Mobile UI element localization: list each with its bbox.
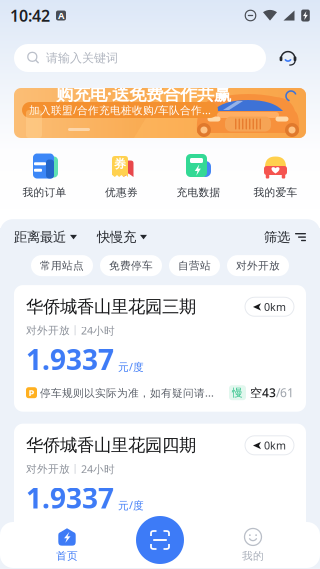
staticText: 华侨城香山里花园三期 [26, 296, 196, 317]
staticText: 元/度 [118, 360, 144, 374]
staticText: 筛选 [264, 229, 290, 245]
staticText: 1.9337 [26, 341, 114, 378]
button[interactable]: 扫一扫 [136, 516, 184, 564]
staticText: 丨 [70, 324, 81, 337]
button[interactable]: 在线客服 [266, 44, 310, 72]
staticText: 停车规则以实际为准，如有疑问请... [40, 524, 214, 538]
staticText: 我的爱车 [253, 186, 297, 199]
staticText: 10:42 [10, 5, 50, 26]
staticText: A [58, 9, 64, 22]
staticText: 充电数据 [176, 186, 220, 199]
staticText: 0km [264, 438, 286, 452]
staticText: 对外开放 [26, 462, 70, 476]
button[interactable]: 筛选 [264, 229, 306, 245]
staticText: 优惠券 [105, 186, 138, 199]
button[interactable]: 常用站点 [31, 255, 93, 276]
staticText: 停车规则以实际为准，如有疑问请... [40, 386, 214, 400]
button[interactable]: 充电数据 [160, 151, 237, 199]
button[interactable]: 我的 [186, 522, 320, 568]
button[interactable]: 券 [83, 151, 160, 199]
staticText: 我的订单 [22, 186, 66, 199]
button[interactable]: 我的订单 [6, 151, 83, 199]
staticText: 24小时 [81, 462, 115, 476]
button[interactable]: 免费停车 [100, 255, 162, 276]
staticText: 加入联盟/合作充电桩收购/车队合作... [29, 103, 211, 117]
staticText: 空43 [250, 385, 276, 401]
staticText: 华侨城香山里花园四期 [26, 435, 196, 456]
staticText: 自营站 [178, 259, 211, 272]
button[interactable]: 购充电·送免费合作共赢 [0, 88, 320, 138]
staticText: 常用站点 [40, 259, 84, 272]
button[interactable]: 我的爱车 [237, 151, 314, 199]
button[interactable]: 距离最近 [14, 229, 77, 245]
button[interactable]: 快慢充 [77, 229, 147, 245]
staticText: 慢 [232, 386, 243, 399]
staticText: 购充电·送免费合作共赢 [56, 82, 231, 105]
staticText: 距离最近 [14, 229, 66, 245]
staticText: 24小时 [81, 323, 115, 338]
staticText: 丨 [70, 462, 81, 476]
button[interactable]: 对外开放 [227, 255, 289, 276]
button[interactable]: 请输入关键词 [14, 44, 266, 72]
staticText: 空43 [250, 523, 276, 539]
staticText: 元/度 [118, 498, 144, 512]
button[interactable]: 华侨城香山里花园三期 [14, 285, 306, 412]
staticText: 0km [264, 300, 286, 314]
button[interactable]: 首页 [0, 522, 134, 568]
staticText: 对外开放 [236, 259, 280, 272]
staticText: 券 [114, 157, 126, 171]
staticText: 首页 [56, 549, 78, 562]
staticText: 免费停车 [109, 259, 153, 272]
staticText: 我的 [242, 549, 264, 562]
staticText: 请输入关键词 [46, 51, 118, 65]
staticText: /61 [276, 385, 294, 401]
button[interactable]: 自营站 [169, 255, 220, 276]
staticText: P [28, 386, 34, 399]
staticText: 1.9337 [26, 479, 114, 516]
staticText: 快慢充 [97, 229, 136, 245]
button[interactable]: 华侨城香山里花园四期 [14, 424, 306, 550]
staticText: 对外开放 [26, 324, 70, 337]
